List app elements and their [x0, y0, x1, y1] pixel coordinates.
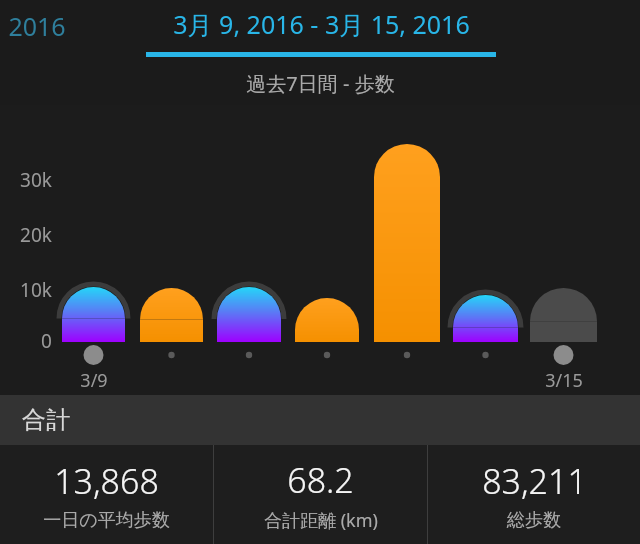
staticText: 10k — [20, 277, 52, 303]
staticText: 13,868 — [54, 458, 159, 504]
staticText: 20k — [20, 222, 52, 248]
button[interactable]: 68.2 — [214, 445, 427, 544]
staticText: 過去7日間 - 歩数 — [246, 70, 395, 97]
staticText: 一日の平均歩数 — [43, 509, 170, 532]
button[interactable]: 合計 — [0, 395, 640, 445]
button[interactable]: 3月 9, 2016 - 3月 15, 2016 — [146, 0, 496, 58]
staticText: 総歩数 — [507, 509, 561, 532]
staticText: 3/9 — [80, 368, 108, 393]
staticText: 68.2 — [287, 457, 354, 503]
staticText: 2016 — [8, 9, 66, 43]
staticText: 30k — [20, 167, 52, 193]
button[interactable]: 83,211 — [428, 445, 640, 544]
staticText: 合計 — [22, 405, 70, 435]
staticText: 83,211 — [482, 458, 587, 504]
staticText: 3月 9, 2016 - 3月 15, 2016 — [173, 7, 470, 41]
button[interactable]: 13,868 — [0, 445, 213, 544]
staticText: 0 — [41, 328, 52, 354]
staticText: 3/15 — [545, 368, 583, 393]
staticText: 合計距離 (km) — [264, 508, 378, 533]
button[interactable]: 2016 — [0, 0, 130, 58]
